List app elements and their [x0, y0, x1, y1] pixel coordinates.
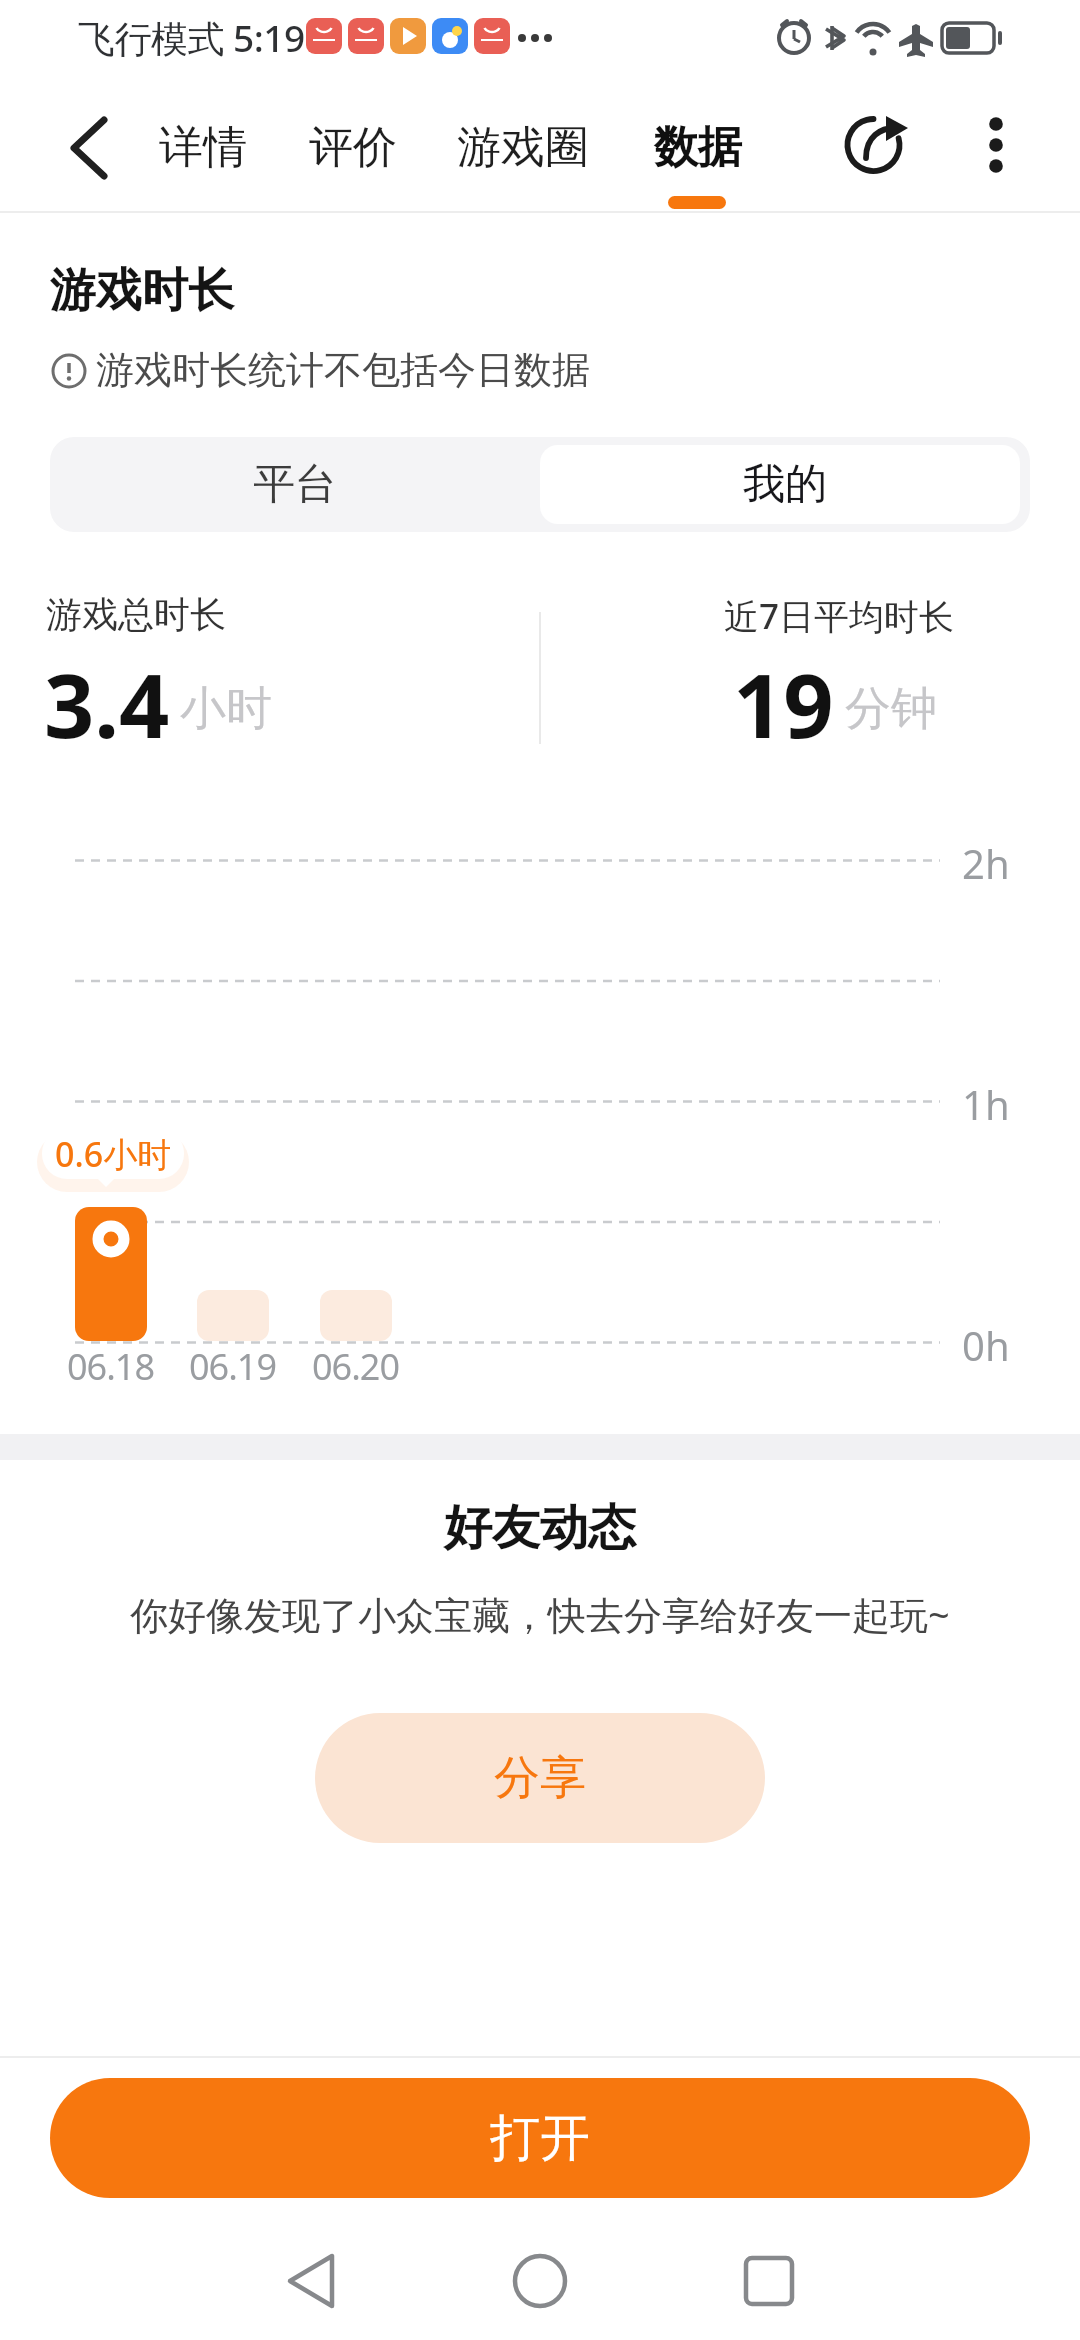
- button[interactable]: 分享: [315, 1713, 765, 1843]
- button[interactable]: 详情: [140, 100, 265, 195]
- staticText: 好友动态: [444, 1498, 636, 1558]
- staticText: 游戏时长: [50, 262, 234, 320]
- button[interactable]: [64, 112, 120, 184]
- staticText: 19: [733, 644, 834, 764]
- button[interactable]: [729, 2250, 809, 2312]
- staticText: 游戏圈: [457, 120, 589, 175]
- staticText: 06.20: [312, 1342, 400, 1391]
- staticText: 平台: [253, 458, 337, 511]
- staticText: 3.4: [44, 644, 170, 764]
- button[interactable]: 评价: [290, 100, 415, 195]
- staticText: 打开: [490, 2107, 590, 2170]
- staticText: 分钟: [845, 680, 937, 738]
- button[interactable]: [843, 114, 913, 180]
- staticText: 我的: [743, 458, 827, 511]
- button[interactable]: [978, 106, 1014, 186]
- staticText: 评价: [309, 120, 397, 175]
- button[interactable]: 游戏圈: [440, 100, 605, 195]
- staticText: 06.18: [67, 1342, 155, 1391]
- staticText: 分享: [494, 1749, 586, 1807]
- staticText: 0h: [962, 1318, 1010, 1372]
- button[interactable]: 数据: [635, 100, 760, 195]
- button[interactable]: [500, 2250, 580, 2312]
- staticText: 飞行模式 5:19: [78, 12, 305, 63]
- button[interactable]: [540, 445, 1020, 524]
- staticText: 数据: [654, 120, 742, 175]
- staticText: 小时: [180, 680, 272, 738]
- staticText: 06.19: [189, 1342, 277, 1391]
- button[interactable]: 平台: [50, 437, 540, 532]
- staticText: 详情: [159, 120, 247, 175]
- staticText: 游戏时长统计不包括今日数据: [96, 346, 590, 394]
- staticText: 游戏总时长: [46, 592, 226, 637]
- staticText: 1h: [962, 1077, 1010, 1131]
- staticText: 0.6小时: [55, 1131, 172, 1177]
- button[interactable]: [270, 2250, 350, 2312]
- staticText: 2h: [962, 836, 1010, 890]
- button[interactable]: 打开: [50, 2078, 1030, 2198]
- staticText: 近7日平均时长: [724, 592, 955, 640]
- staticText: 你好像发现了小众宝藏，快去分享给好友一起玩~: [130, 1588, 950, 1640]
